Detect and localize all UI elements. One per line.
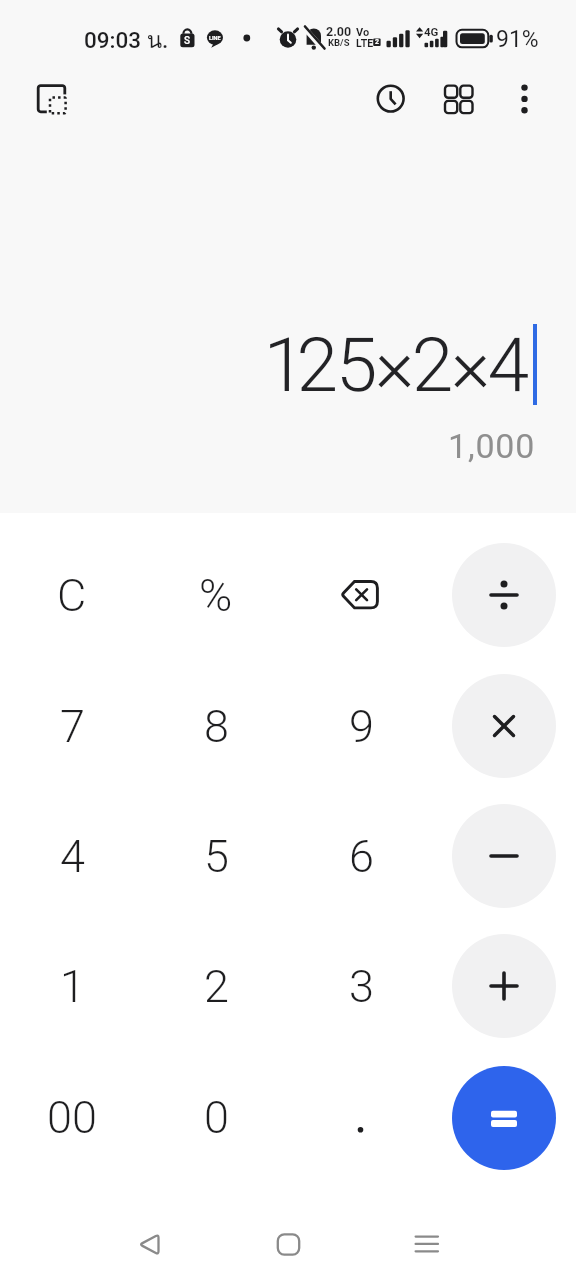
button[interactable]: 0	[144, 1052, 288, 1182]
button[interactable]	[452, 934, 556, 1038]
staticText: 5	[204, 830, 229, 883]
staticText: 2	[375, 38, 380, 46]
staticText: LTE	[356, 37, 374, 49]
button[interactable]	[452, 543, 556, 647]
staticText: 1,000	[448, 426, 536, 466]
staticText: %	[199, 569, 233, 622]
button[interactable]	[436, 77, 480, 121]
staticText: 91%	[496, 26, 539, 53]
button[interactable]: %	[144, 530, 288, 660]
button[interactable]: 5	[144, 791, 288, 921]
staticText: C	[57, 569, 87, 622]
staticText: 00	[47, 1091, 97, 1144]
button[interactable]: 1	[0, 921, 144, 1051]
staticText: 2	[204, 960, 229, 1013]
button[interactable]: 2	[144, 921, 288, 1051]
button[interactable]	[452, 674, 556, 778]
button[interactable]	[452, 1066, 556, 1170]
button[interactable]	[29, 77, 73, 121]
button[interactable]: 3	[289, 921, 433, 1051]
staticText: 3	[349, 960, 374, 1013]
staticText: 7	[60, 700, 85, 753]
button[interactable]	[289, 530, 433, 660]
button[interactable]: C	[0, 530, 144, 660]
staticText: 4	[60, 830, 85, 883]
staticText: KB/S	[328, 37, 350, 48]
button[interactable]: 6	[289, 791, 433, 921]
button[interactable]	[368, 77, 412, 121]
staticText: 125×2×4	[266, 321, 528, 409]
button[interactable]	[452, 804, 556, 908]
button[interactable]: 8	[144, 661, 288, 791]
button[interactable]	[289, 1052, 433, 1182]
staticText: 6	[349, 830, 374, 883]
staticText: 09:03 น.	[84, 22, 169, 58]
button[interactable]	[502, 77, 546, 121]
staticText: 4G	[424, 25, 439, 38]
staticText: LINE	[209, 35, 221, 41]
staticText: Vo	[356, 26, 370, 39]
button[interactable]: 9	[289, 661, 433, 791]
staticText: S	[184, 35, 191, 47]
button[interactable]	[109, 1215, 189, 1275]
button[interactable]: 7	[0, 661, 144, 791]
staticText: 9	[349, 700, 374, 753]
staticText: 8	[204, 700, 229, 753]
button[interactable]	[248, 1215, 328, 1275]
button[interactable]	[387, 1215, 467, 1275]
staticText: 2.00	[326, 24, 352, 39]
staticText: 0	[204, 1091, 229, 1144]
button[interactable]: 00	[0, 1052, 144, 1182]
button[interactable]: 4	[0, 791, 144, 921]
staticText: 1	[60, 960, 85, 1013]
